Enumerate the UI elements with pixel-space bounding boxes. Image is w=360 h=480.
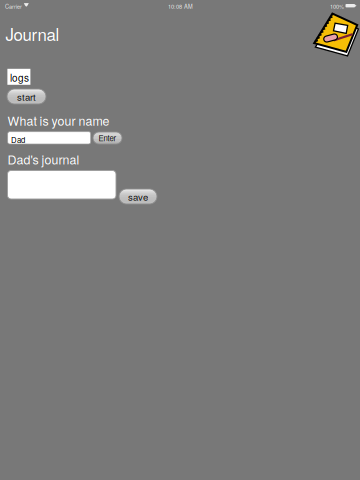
staticText: Dad xyxy=(11,134,25,145)
staticText: 100% xyxy=(330,2,344,10)
staticText: Carrier xyxy=(5,2,22,10)
staticText: Enter xyxy=(98,132,116,144)
staticText: Journal xyxy=(6,22,60,46)
button[interactable]: Enter xyxy=(93,132,122,144)
staticText: start xyxy=(17,90,36,103)
staticText: 10:08 AM xyxy=(168,2,193,10)
staticText: save xyxy=(128,190,148,203)
staticText: Dad's journal xyxy=(7,150,79,168)
button[interactable]: start xyxy=(7,89,46,104)
button[interactable]: save xyxy=(119,189,157,204)
staticText: logs xyxy=(10,70,29,85)
staticText: What is your name xyxy=(8,112,110,129)
